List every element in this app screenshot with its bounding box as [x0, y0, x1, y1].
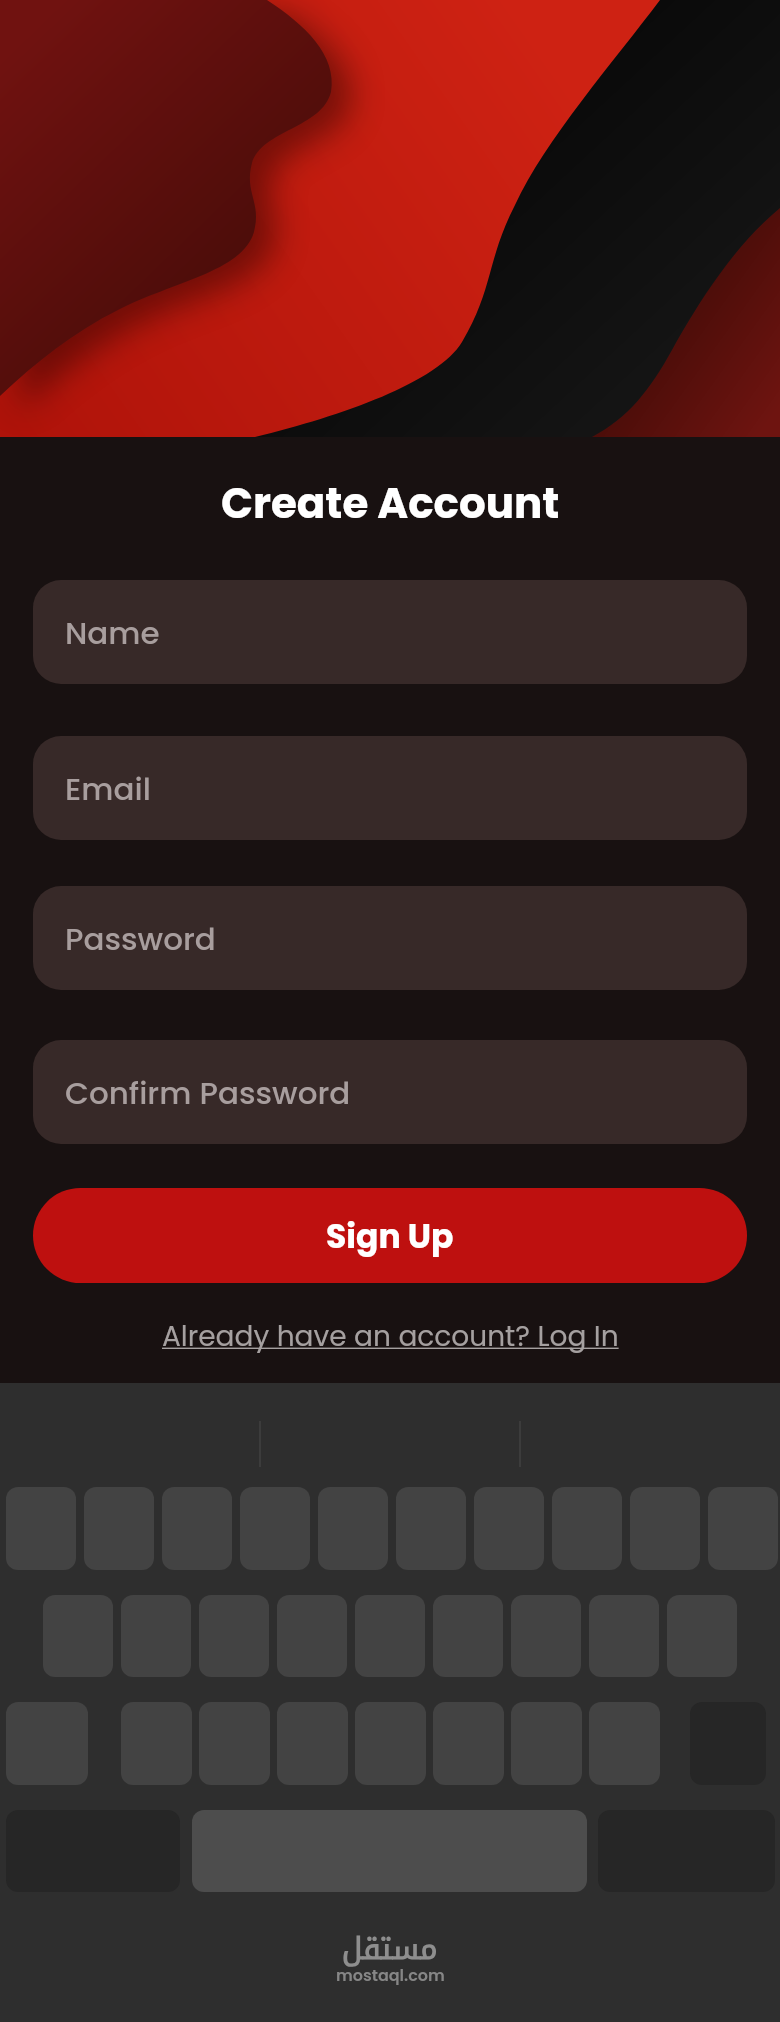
staticText: Name	[65, 611, 160, 654]
button[interactable]: Confirm Password	[33, 1040, 747, 1144]
staticText: Confirm Password	[65, 1071, 351, 1114]
button[interactable]: Email	[33, 736, 747, 840]
button[interactable]: Already have an account? Log In	[162, 1317, 619, 1356]
button[interactable]: Name	[33, 580, 747, 684]
staticText: مستقل	[342, 1921, 438, 1973]
staticText: Create Account	[221, 474, 560, 533]
button[interactable]: Sign Up	[33, 1188, 747, 1283]
staticText: Already have an account? Log In	[162, 1317, 619, 1356]
staticText: Password	[65, 917, 216, 960]
staticText: Email	[65, 767, 151, 810]
staticText: mostaql.com	[336, 1964, 445, 1986]
staticText: Sign Up	[326, 1213, 454, 1259]
button[interactable]: Password	[33, 886, 747, 990]
